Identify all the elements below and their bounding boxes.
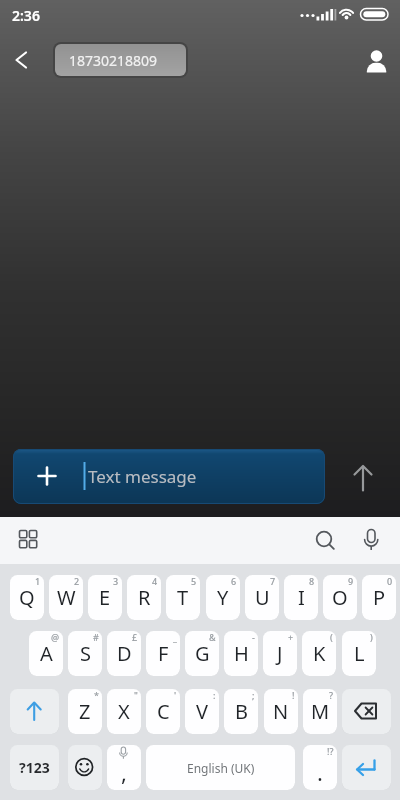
button[interactable]: E	[88, 575, 122, 620]
staticText: 3	[113, 575, 119, 587]
button[interactable]: Q	[10, 575, 44, 620]
staticText: English (UK)	[187, 760, 255, 776]
staticText: 18730218809	[69, 51, 158, 70]
button[interactable]: T	[166, 575, 200, 620]
staticText: G	[195, 640, 210, 667]
button[interactable]: N	[264, 689, 298, 734]
staticText: :	[213, 689, 216, 701]
button[interactable]: 18730218809	[55, 44, 186, 76]
button[interactable]	[346, 460, 380, 494]
staticText: W	[57, 584, 76, 611]
button[interactable]: H	[224, 631, 258, 676]
staticText: I	[298, 584, 305, 611]
staticText: 6	[231, 575, 237, 587]
staticText: +	[288, 631, 294, 643]
button[interactable]	[10, 689, 59, 734]
staticText: .	[317, 757, 323, 787]
button[interactable]: X	[107, 689, 141, 734]
button[interactable]: S	[68, 631, 102, 676]
button[interactable]: Y	[206, 575, 240, 620]
staticText: X	[118, 698, 130, 725]
staticText: J	[277, 640, 283, 667]
staticText: £	[132, 631, 138, 643]
staticText: (	[330, 631, 333, 643]
staticText: O	[332, 584, 348, 611]
button[interactable]	[342, 745, 391, 790]
button[interactable]	[68, 745, 102, 790]
staticText: 2	[74, 575, 80, 587]
staticText: _	[173, 631, 177, 643]
button[interactable]: D	[107, 631, 141, 676]
staticText: &	[209, 631, 216, 643]
staticText: S	[80, 640, 91, 667]
button[interactable]	[356, 525, 386, 553]
staticText: ,	[121, 757, 127, 787]
button[interactable]: V	[185, 689, 219, 734]
staticText: *	[94, 689, 99, 701]
button[interactable]: English (UK)	[146, 745, 295, 790]
staticText: ?123	[19, 758, 50, 777]
button[interactable]: .	[303, 745, 337, 790]
staticText: 7	[270, 575, 276, 587]
button[interactable]: R	[127, 575, 161, 620]
button[interactable]	[342, 689, 391, 734]
staticText: 1	[35, 575, 41, 587]
button[interactable]: ,	[107, 745, 141, 790]
staticText: V	[196, 698, 208, 725]
staticText: 2:36	[12, 6, 40, 25]
button[interactable]: F	[146, 631, 180, 676]
staticText: Y	[217, 584, 229, 611]
staticText: ;	[252, 689, 255, 701]
staticText: '	[174, 689, 177, 701]
staticText: !?	[327, 745, 334, 757]
staticText: Q	[19, 584, 35, 611]
staticText: 9	[348, 575, 354, 587]
staticText: E	[99, 584, 111, 611]
staticText: R	[138, 584, 151, 611]
button[interactable]: G	[185, 631, 219, 676]
staticText: H	[234, 640, 249, 667]
button[interactable]: O	[323, 575, 357, 620]
staticText: P	[373, 584, 386, 611]
button[interactable]: ?123	[10, 745, 59, 790]
button[interactable]: B	[224, 689, 258, 734]
staticText: @	[51, 631, 60, 643]
staticText: C	[157, 698, 170, 725]
staticText: F	[158, 640, 169, 667]
button[interactable]: A	[29, 631, 63, 676]
button[interactable]: U	[245, 575, 279, 620]
button[interactable]: Text message	[13, 449, 325, 504]
staticText: U	[255, 584, 270, 611]
staticText: 8	[309, 575, 315, 587]
staticText: A	[40, 640, 53, 667]
button[interactable]	[4, 46, 38, 74]
button[interactable]	[10, 527, 46, 555]
staticText: 5	[191, 575, 197, 587]
staticText: 4	[152, 575, 158, 587]
staticText: D	[117, 640, 132, 667]
button[interactable]: P	[362, 575, 396, 620]
button[interactable]	[360, 44, 392, 76]
button[interactable]: J	[263, 631, 297, 676]
staticText: K	[313, 640, 326, 667]
staticText: "	[134, 689, 138, 701]
button[interactable]: W	[49, 575, 83, 620]
staticText: N	[273, 698, 289, 725]
staticText: -	[252, 631, 255, 643]
staticText: Z	[79, 698, 91, 725]
button[interactable]: K	[302, 631, 336, 676]
staticText: M	[311, 698, 330, 725]
button[interactable]: C	[146, 689, 180, 734]
staticText: Text message	[88, 465, 197, 488]
button[interactable]	[30, 459, 64, 493]
button[interactable]: I	[284, 575, 318, 620]
staticText: ?	[329, 689, 334, 701]
staticText: T	[177, 584, 189, 611]
staticText: !	[292, 689, 295, 701]
button[interactable]: L	[342, 631, 376, 676]
staticText: #	[93, 631, 99, 643]
staticText: L	[354, 640, 365, 667]
button[interactable]	[308, 525, 338, 553]
button[interactable]: M	[303, 689, 337, 734]
button[interactable]: Z	[68, 689, 102, 734]
